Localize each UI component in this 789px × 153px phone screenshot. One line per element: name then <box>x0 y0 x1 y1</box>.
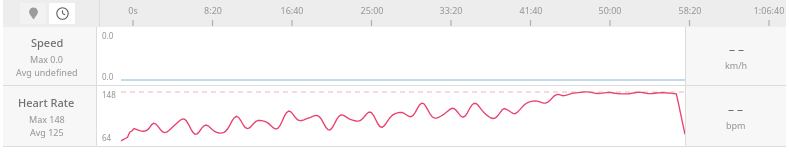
staticText: Heart Rate <box>18 95 75 110</box>
staticText: 16:40 <box>262 4 322 16</box>
staticText: Max 148 <box>29 113 65 125</box>
staticText: Avg 125 <box>30 126 64 138</box>
staticText: km/h <box>725 59 748 71</box>
button[interactable]: – – <box>686 86 786 146</box>
button[interactable]: Map location <box>20 3 46 24</box>
staticText: Speed <box>31 35 64 50</box>
staticText: – – <box>728 101 744 117</box>
staticText: 0.0 <box>102 71 114 82</box>
staticText: 50:00 <box>580 4 640 16</box>
button[interactable]: Time axis <box>49 3 75 24</box>
button[interactable]: – – <box>686 27 786 85</box>
staticText: Max 0.0 <box>30 53 64 65</box>
staticText: 0s <box>103 4 163 16</box>
staticText: 64 <box>102 132 112 143</box>
button[interactable]: Heart Rate <box>3 86 96 146</box>
staticText: Avg undefined <box>16 66 78 78</box>
staticText: 148 <box>102 89 116 100</box>
staticText: 25:00 <box>342 4 402 16</box>
staticText: 33:20 <box>421 4 481 16</box>
staticText: 58:20 <box>660 4 720 16</box>
staticText: bpm <box>726 119 746 131</box>
staticText: 0.0 <box>102 30 114 41</box>
staticText: – – <box>729 41 745 57</box>
staticText: 8:20 <box>183 4 243 16</box>
staticText: 41:40 <box>501 4 561 16</box>
staticText: 1:06:40 <box>739 4 789 16</box>
button[interactable]: Speed <box>3 27 96 85</box>
